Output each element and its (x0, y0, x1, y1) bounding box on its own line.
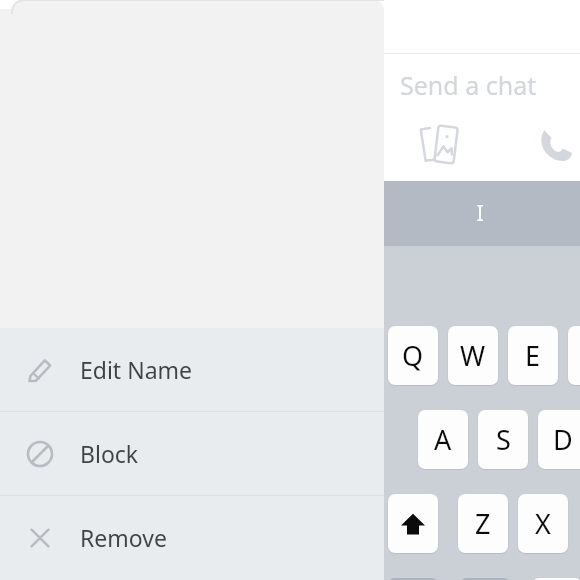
button[interactable]: Key (460, 578, 510, 580)
button[interactable]: Remove (0, 496, 384, 579)
staticText: A (434, 421, 452, 458)
button[interactable]: A (418, 410, 468, 469)
button[interactable]: S (478, 410, 528, 469)
button[interactable]: W (448, 326, 498, 385)
staticText: S (496, 421, 511, 458)
button[interactable]: Block (0, 412, 384, 495)
button[interactable]: Send a snap (412, 118, 468, 170)
staticText: I (476, 199, 484, 228)
staticText: Remove (80, 522, 167, 553)
button[interactable]: R (568, 326, 580, 385)
staticText: Edit Name (80, 354, 193, 385)
button[interactable]: D (538, 410, 580, 469)
button[interactable]: Edit Name (0, 328, 384, 411)
staticText: W (460, 337, 486, 374)
staticText: Q (402, 337, 424, 374)
staticText: X (535, 505, 551, 542)
button[interactable]: Key (532, 578, 580, 580)
button[interactable]: I (384, 181, 580, 246)
button[interactable]: Call (530, 118, 580, 170)
button[interactable]: Key (388, 494, 438, 553)
staticText: Block (80, 438, 139, 469)
button[interactable]: Z (458, 494, 508, 553)
staticText: Z (475, 505, 491, 542)
staticText: D (553, 421, 573, 458)
staticText: E (525, 337, 541, 374)
button[interactable]: Q (388, 326, 438, 385)
button[interactable]: X (518, 494, 568, 553)
button[interactable]: 123 (388, 578, 438, 580)
button[interactable]: E (508, 326, 558, 385)
button[interactable]: Send a chat (400, 68, 537, 102)
